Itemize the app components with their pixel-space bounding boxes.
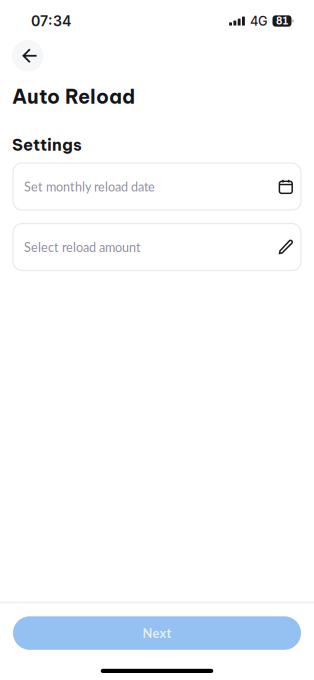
staticText: 07:34 [31, 12, 71, 29]
staticText: 4G [250, 13, 268, 29]
staticText: 81 [276, 15, 288, 27]
button[interactable]: Select reload amount [13, 223, 301, 270]
button[interactable]: Back [12, 40, 43, 71]
staticText: Settings [12, 134, 82, 155]
staticText: Select reload amount [24, 239, 141, 255]
button[interactable]: Next [13, 616, 301, 650]
button[interactable]: Set monthly reload date [13, 163, 301, 210]
staticText: Set monthly reload date [24, 179, 155, 194]
staticText: Auto Reload [12, 84, 135, 109]
staticText: Next [142, 625, 171, 641]
